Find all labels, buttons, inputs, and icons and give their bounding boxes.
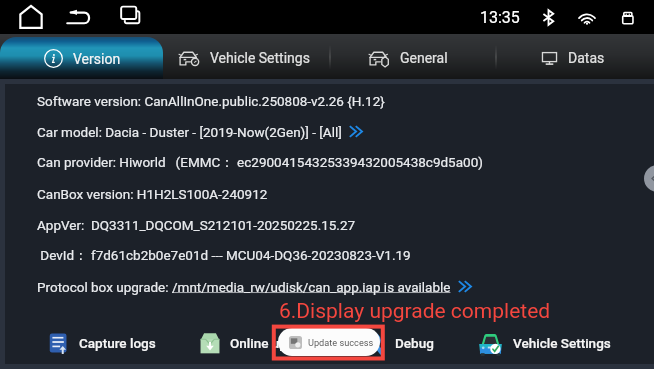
button[interactable]: Expand panel	[644, 165, 654, 192]
staticText: Online upgrade	[230, 335, 322, 351]
staticText: Can provider: Hiworld (EMMC： ec290041543…	[37, 154, 483, 171]
staticText: CanBox version: H1H2LS100A-240912	[37, 186, 268, 202]
button[interactable]: Vehicle Settings	[477, 322, 611, 364]
button[interactable]: Update success	[278, 328, 380, 356]
staticText: Debug	[395, 335, 434, 351]
staticText: Version	[73, 51, 121, 67]
staticText: General	[400, 50, 448, 66]
staticText: Car model: Dacia - Duster - [2019-Now(2G…	[37, 124, 342, 140]
button[interactable]: Recents	[113, 0, 147, 34]
staticText: 6.Display upgrade completed	[279, 299, 551, 324]
staticText: Vehicle Settings	[210, 50, 310, 66]
staticText: /mnt/media_rw/udisk/can_app.iap is avail…	[172, 279, 451, 295]
staticText: AppVer: DQ3311_DQCOM_S212101-20250225.15…	[37, 217, 356, 233]
staticText: Protocol box upgrade:	[37, 279, 172, 295]
button[interactable]: Debug	[364, 322, 434, 364]
button[interactable]: Home	[14, 0, 48, 34]
staticText: Capture logs	[79, 335, 156, 351]
button[interactable]: Online upgrade	[199, 322, 322, 364]
staticText: 13:35	[480, 8, 520, 27]
staticText: Software version: CanAllInOne.public.250…	[37, 93, 385, 109]
button[interactable]: Back	[62, 0, 96, 34]
staticText: Update success	[308, 337, 374, 348]
button[interactable]: Capture logs	[48, 322, 156, 364]
button[interactable]: Vehicle Settings	[163, 37, 326, 79]
button[interactable]: General	[326, 37, 490, 79]
button[interactable]: Datas	[490, 37, 654, 79]
staticText: DevId： f7d61cb2b0e7e01d --- MCU04-DQ36-2…	[37, 247, 411, 264]
staticText: Vehicle Settings	[513, 335, 611, 351]
button[interactable]: Version	[0, 37, 163, 79]
staticText: Datas	[568, 50, 605, 66]
